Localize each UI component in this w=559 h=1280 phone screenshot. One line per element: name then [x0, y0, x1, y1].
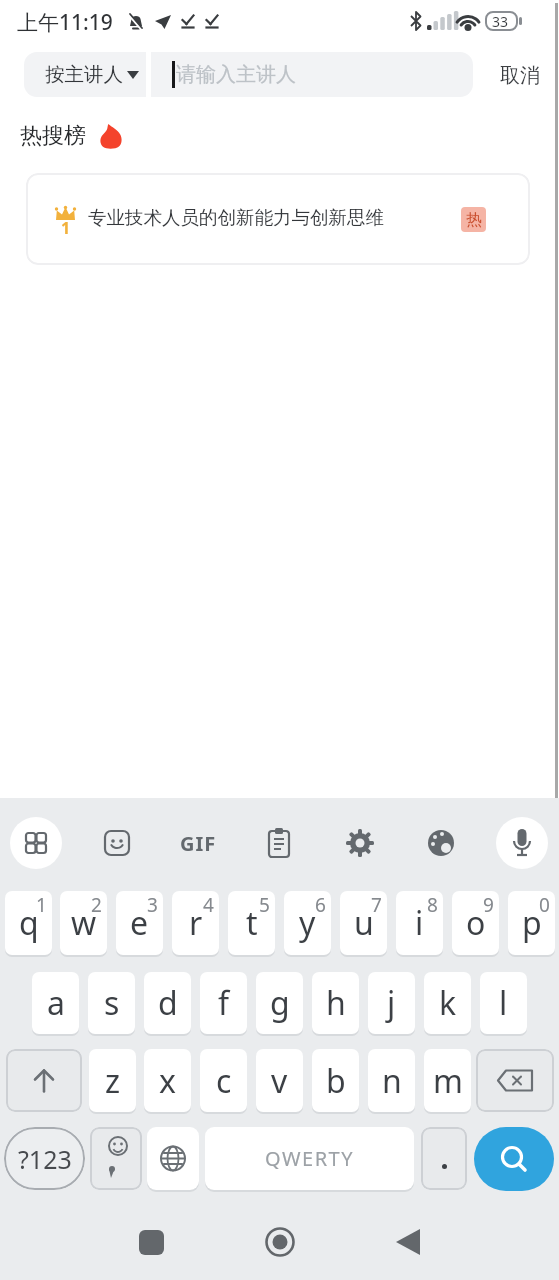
button[interactable]: 按主讲人 [24, 52, 146, 97]
staticText: i [415, 901, 424, 945]
staticText: 上午11:19 [17, 8, 113, 37]
button[interactable] [476, 1049, 554, 1112]
button[interactable]: d [144, 972, 191, 1034]
button[interactable] [474, 1127, 554, 1191]
button[interactable] [6, 1049, 82, 1112]
button[interactable] [394, 1228, 422, 1256]
button[interactable] [419, 821, 463, 865]
staticText: 按主讲人 [45, 62, 123, 87]
button[interactable]: r [172, 891, 219, 955]
button[interactable]: m [424, 1049, 471, 1112]
staticText: QWERTY [265, 1145, 355, 1172]
button[interactable]: q [5, 891, 52, 955]
button[interactable] [139, 1230, 164, 1255]
staticText: 2 [91, 892, 102, 918]
staticText: z [105, 1059, 121, 1103]
staticText: 33 [492, 12, 509, 31]
staticText: 取消 [500, 63, 540, 88]
staticText: x [159, 1059, 176, 1103]
button[interactable]: 取消 [490, 57, 550, 93]
button[interactable]: ?123 [4, 1127, 85, 1190]
button[interactable] [500, 821, 544, 865]
staticText: 8 [427, 892, 438, 918]
button[interactable]: k [424, 972, 471, 1034]
button[interactable] [90, 1127, 142, 1190]
staticText: 6 [315, 892, 326, 918]
button[interactable]: l [480, 972, 527, 1034]
staticText: s [104, 981, 120, 1025]
staticText: 热 [466, 210, 482, 230]
button[interactable] [95, 821, 139, 865]
staticText: 4 [203, 892, 214, 918]
staticText: b [326, 1059, 346, 1103]
button[interactable]: p [508, 891, 555, 955]
button[interactable]: s [88, 972, 135, 1034]
button[interactable]: a [32, 972, 79, 1034]
staticText: m [433, 1059, 463, 1103]
staticText: 3 [147, 892, 158, 918]
button[interactable]: h [312, 972, 359, 1034]
button[interactable]: 请输入主讲人 [176, 62, 296, 87]
staticText: 1 [36, 892, 47, 918]
button[interactable]: GIF [172, 821, 224, 865]
button[interactable]: t [228, 891, 275, 955]
button[interactable]: n [368, 1049, 415, 1112]
staticText: q [19, 901, 39, 945]
staticText: j [387, 981, 396, 1025]
staticText: 9 [483, 892, 494, 918]
button[interactable] [14, 821, 58, 865]
staticText: e [130, 901, 149, 945]
button[interactable]: o [452, 891, 499, 955]
staticText: v [271, 1059, 288, 1103]
button[interactable] [147, 1127, 199, 1190]
staticText: y [299, 901, 316, 945]
button[interactable]: z [89, 1049, 136, 1112]
button[interactable] [264, 1226, 296, 1258]
button[interactable]: j [368, 972, 415, 1034]
staticText: h [326, 981, 346, 1025]
staticText: ?123 [18, 1142, 72, 1176]
staticText: c [216, 1059, 232, 1103]
staticText: w [71, 901, 97, 945]
staticText: d [158, 981, 178, 1025]
button[interactable] [338, 821, 382, 865]
button[interactable]: QWERTY [205, 1127, 414, 1190]
staticText: n [382, 1059, 402, 1103]
button[interactable]: v [256, 1049, 303, 1112]
button[interactable]: 1 [26, 173, 530, 265]
staticText: u [354, 901, 374, 945]
button[interactable] [421, 1127, 467, 1190]
staticText: 专业技术人员的创新能力与创新思维 [88, 206, 384, 229]
button[interactable]: x [144, 1049, 191, 1112]
button[interactable]: w [60, 891, 107, 955]
button[interactable]: f [200, 972, 247, 1034]
staticText: GIF [180, 830, 217, 857]
staticText: 热搜榜 [20, 122, 86, 150]
button[interactable]: b [312, 1049, 359, 1112]
button[interactable] [257, 821, 301, 865]
staticText: p [522, 901, 542, 945]
staticText: 1 [61, 217, 71, 235]
button[interactable]: i [396, 891, 443, 955]
staticText: g [270, 981, 290, 1025]
staticText: k [439, 981, 457, 1025]
staticText: a [47, 981, 65, 1025]
staticText: f [218, 981, 230, 1025]
button[interactable]: g [256, 972, 303, 1034]
staticText: l [499, 981, 508, 1025]
staticText: r [189, 901, 203, 945]
staticText: o [466, 901, 486, 945]
staticText: t [246, 901, 258, 945]
button[interactable]: y [284, 891, 331, 955]
button[interactable]: c [200, 1049, 247, 1112]
staticText: 7 [371, 892, 382, 918]
button[interactable]: e [116, 891, 163, 955]
button[interactable]: u [340, 891, 387, 955]
staticText: 5 [259, 892, 270, 918]
staticText: 0 [539, 892, 550, 918]
